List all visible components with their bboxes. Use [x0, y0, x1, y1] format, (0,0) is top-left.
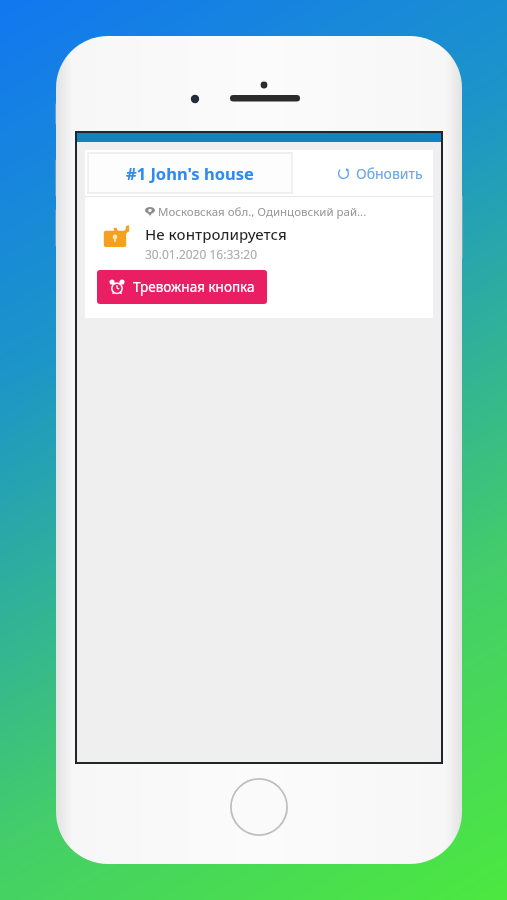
other: Unlocked: [101, 219, 129, 247]
staticText: Тревожная кнопка: [133, 278, 255, 296]
other: Refresh: [337, 167, 350, 180]
staticText: #1 John's house: [126, 162, 254, 184]
staticText: Обновить: [356, 164, 423, 183]
button[interactable]: #1 John's house: [88, 153, 292, 193]
staticText: 30.01.2020 16:33:20: [145, 246, 258, 262]
button[interactable]: Refresh: [293, 153, 433, 193]
staticText: Московская обл., Одинцовский рай...: [158, 204, 367, 220]
staticText: Не контролируется: [145, 224, 287, 244]
button[interactable]: Тревожная кнопка: [97, 270, 267, 304]
